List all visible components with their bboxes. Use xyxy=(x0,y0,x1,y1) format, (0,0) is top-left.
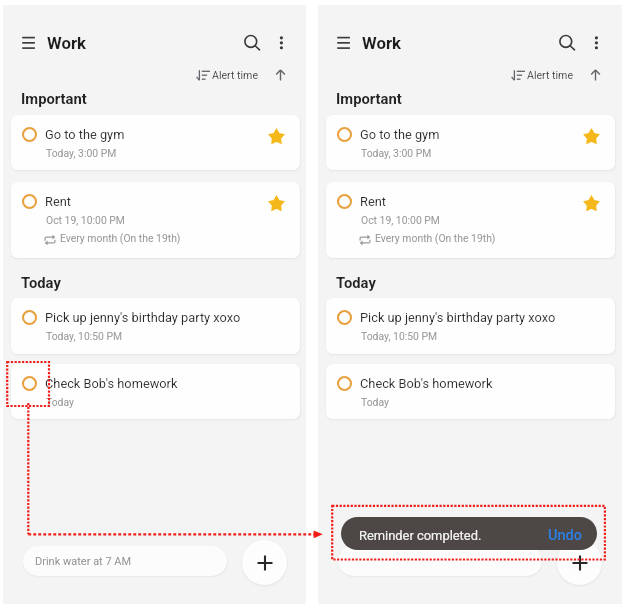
button[interactable]: Alert time xyxy=(191,65,267,85)
button[interactable]: Rent xyxy=(326,182,615,258)
staticText: Check Bob's homework xyxy=(45,376,178,391)
staticText: Check Bob's homework xyxy=(360,376,493,391)
button[interactable]: Rent xyxy=(11,182,300,258)
staticText: Rent xyxy=(360,194,386,209)
staticText: Today xyxy=(361,396,389,408)
staticText: Pick up jenny's birthday party xoxo xyxy=(360,310,556,325)
button[interactable]: Pick up jenny's birthday party xoxo xyxy=(326,298,615,354)
button[interactable]: Undo xyxy=(548,527,582,544)
staticText: Pick up jenny's birthday party xoxo xyxy=(45,310,241,325)
staticText: Important xyxy=(336,90,402,107)
button[interactable]: Sort order ascending xyxy=(584,63,607,86)
staticText: Today, 10:50 PM xyxy=(361,330,438,342)
staticText: Today xyxy=(21,274,61,291)
staticText: Today xyxy=(46,396,74,408)
button[interactable]: Go to the gym xyxy=(326,115,615,170)
staticText: Today, 3:00 PM xyxy=(46,147,117,159)
button[interactable] xyxy=(338,546,542,576)
button[interactable]: More options xyxy=(583,23,608,48)
staticText: Alert time xyxy=(212,69,258,81)
button[interactable]: Go to the gym xyxy=(11,115,300,170)
staticText: Undo xyxy=(548,527,582,544)
button[interactable]: More options xyxy=(268,23,293,48)
button[interactable]: Drink water at 7 AM xyxy=(23,546,227,576)
staticText: Oct 19, 10:00 PM xyxy=(46,214,125,226)
staticText: Every month (On the 19th) xyxy=(375,232,496,244)
staticText: Important xyxy=(21,90,87,107)
button[interactable]: Navigation menu xyxy=(324,23,352,51)
button[interactable]: Check Bob's homework xyxy=(326,364,615,419)
staticText: Reminder completed. xyxy=(359,528,482,543)
button[interactable]: Check Bob's homework xyxy=(11,364,300,419)
button[interactable]: Pick up jenny's birthday party xoxo xyxy=(11,298,300,354)
staticText: Today xyxy=(336,274,376,291)
staticText: Rent xyxy=(45,194,71,209)
staticText: Every month (On the 19th) xyxy=(60,232,181,244)
button[interactable]: Navigation menu xyxy=(9,23,37,51)
staticText: Alert time xyxy=(527,69,573,81)
staticText: Go to the gym xyxy=(360,127,440,142)
button[interactable]: Add reminder xyxy=(557,540,602,585)
button[interactable]: Alert time xyxy=(506,65,582,85)
staticText: Go to the gym xyxy=(45,127,125,142)
button[interactable]: Add reminder xyxy=(242,540,287,585)
button[interactable]: Search xyxy=(233,23,261,51)
staticText: Today, 3:00 PM xyxy=(361,147,432,159)
button[interactable]: Sort order ascending xyxy=(269,63,292,86)
button[interactable]: Search xyxy=(548,23,576,51)
staticText: Oct 19, 10:00 PM xyxy=(361,214,440,226)
staticText: Today, 10:50 PM xyxy=(46,330,123,342)
staticText: Work xyxy=(362,33,402,53)
staticText: Work xyxy=(47,33,87,53)
staticText: Drink water at 7 AM xyxy=(35,555,132,568)
